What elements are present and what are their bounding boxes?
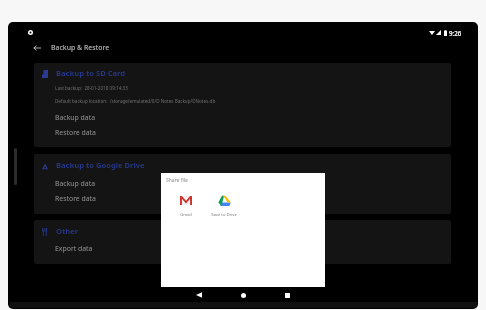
staticText: Backup data <box>55 113 96 122</box>
staticText: Gmail <box>180 212 192 218</box>
staticText: Backup & Restore <box>51 43 110 52</box>
staticText: Restore data <box>55 128 96 137</box>
staticText: Other <box>56 226 79 236</box>
button[interactable]: Backup data <box>34 177 451 192</box>
button[interactable]: Restore data <box>34 126 451 141</box>
button[interactable]: Save to Drive <box>205 194 243 218</box>
button[interactable]: Back <box>189 285 209 305</box>
button[interactable]: Recent apps <box>277 285 297 305</box>
staticText: Restore data <box>55 194 96 203</box>
staticText: Export data <box>55 244 93 253</box>
staticText: 9:26 <box>449 29 462 37</box>
staticText: Default backup location: /storage/emulat… <box>55 98 216 104</box>
button[interactable]: Restore data <box>34 192 451 207</box>
staticText: Last backup: 28-01-2018 09:14:33 <box>55 85 128 91</box>
button[interactable]: Gmail <box>167 194 205 218</box>
button[interactable]: Backup data <box>34 111 451 126</box>
staticText: Share file <box>166 177 188 184</box>
button[interactable]: Back <box>30 41 44 55</box>
button[interactable]: Home <box>233 285 253 305</box>
staticText: Save to Drive <box>211 212 237 218</box>
staticText: Backup data <box>55 179 96 188</box>
staticText: Backup to SD Card <box>56 68 126 78</box>
button[interactable]: Export data <box>34 242 451 257</box>
staticText: Backup to Google Drive <box>56 160 145 170</box>
